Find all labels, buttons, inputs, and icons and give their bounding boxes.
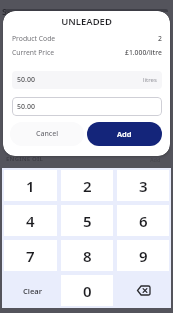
staticText: Add [117,129,132,139]
staticText: 50.00 [17,75,35,85]
staticText: 50.00 [17,102,35,112]
staticText: UNLEADED [3,15,170,28]
button[interactable]: 3 [117,170,169,201]
button[interactable]: Cancel [10,122,84,146]
button[interactable]: Add [87,122,162,146]
staticText: Add [150,156,161,163]
staticText: Clear [23,286,42,296]
button[interactable]: 6 [117,205,169,236]
button[interactable]: Clear [2,273,59,308]
button[interactable]: 1 [4,170,57,201]
staticText: 1 [26,176,35,196]
staticText: Product Code [12,34,56,43]
button[interactable]: 50.00 [17,97,157,116]
staticText: 5 [83,211,92,231]
staticText: £1.000/litre [125,48,162,57]
staticText: 2 [158,34,162,43]
button[interactable]: 4 [4,205,57,236]
button[interactable]: 2 [61,170,113,201]
staticText: 9 [139,246,148,266]
staticText: 8 [83,246,92,266]
staticText: 6 [139,211,148,231]
button[interactable]: 7 [4,240,57,271]
staticText: 7 [26,246,35,266]
staticText: 4 [26,211,35,231]
staticText: 3 [139,176,148,196]
staticText: Se [2,5,13,17]
staticText: 0 [83,281,92,301]
staticText: Current Price [12,48,54,57]
button[interactable]: 8 [61,240,113,271]
staticText: litres [143,76,157,84]
staticText: 2 [83,176,92,196]
button[interactable]: 0 [61,275,113,306]
button[interactable]: 9 [117,240,169,271]
button[interactable]: 5 [61,205,113,236]
staticText: ENGINE OIL [6,155,44,163]
staticText: Cancel [36,129,59,139]
button[interactable]: Backspace [115,273,171,308]
